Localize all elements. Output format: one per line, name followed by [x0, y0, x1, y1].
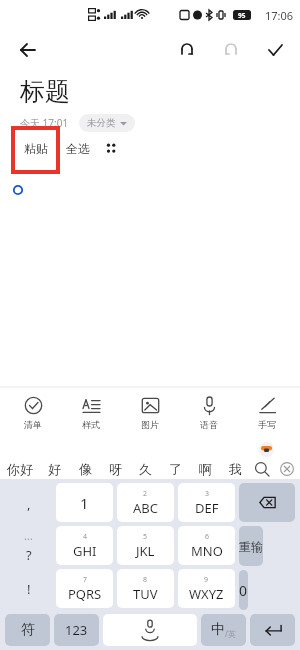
button[interactable]: 6: [178, 526, 235, 565]
button[interactable]: 9: [178, 569, 235, 608]
button[interactable]: 粘贴: [14, 132, 58, 164]
staticText: 啊: [199, 461, 212, 477]
button[interactable]: 样式: [65, 392, 117, 434]
staticText: TUV: [133, 585, 158, 603]
button[interactable]: Space: [103, 614, 197, 646]
button[interactable]: 好: [39, 461, 70, 477]
staticText: 3: [205, 489, 210, 499]
button[interactable]: More: [98, 132, 124, 164]
staticText: 久: [139, 461, 152, 477]
staticText: 好: [48, 461, 61, 477]
staticText: 图片: [141, 419, 159, 430]
staticText: PQRS: [68, 585, 102, 603]
button[interactable]: Backspace: [239, 483, 295, 522]
staticText: WXYZ: [189, 585, 224, 603]
button[interactable]: 你好: [0, 461, 39, 477]
staticText: 未分类: [87, 117, 116, 129]
button[interactable]: Done: [260, 35, 290, 65]
button[interactable]: Undo: [172, 35, 202, 65]
staticText: JKL: [136, 542, 155, 560]
staticText: 粘贴: [24, 141, 48, 156]
staticText: 像: [79, 461, 92, 477]
staticText: ...: [24, 528, 33, 543]
staticText: 全选: [66, 141, 90, 156]
button[interactable]: ...: [5, 524, 52, 568]
staticText: ?: [26, 546, 32, 564]
staticText: 4: [83, 532, 88, 542]
staticText: !: [27, 580, 31, 598]
button[interactable]: 4: [56, 526, 113, 565]
button[interactable]: Enter: [250, 614, 295, 646]
button[interactable]: 0: [239, 570, 248, 610]
button[interactable]: Redo: [216, 35, 246, 65]
staticText: 你好: [7, 461, 33, 477]
button[interactable]: Sticker: [259, 442, 274, 457]
staticText: MNO: [191, 542, 223, 560]
button[interactable]: ,: [5, 483, 52, 524]
staticText: 9: [204, 575, 209, 585]
staticText: 中: [211, 621, 225, 639]
staticText: 7: [83, 575, 88, 585]
staticText: ABC: [133, 499, 158, 517]
staticText: 8: [143, 575, 148, 585]
staticText: /英: [225, 628, 236, 639]
button[interactable]: 清单: [7, 392, 59, 434]
staticText: 5: [143, 532, 148, 542]
button[interactable]: 8: [117, 569, 174, 608]
button[interactable]: 全选: [58, 132, 98, 164]
staticText: 0: [239, 581, 248, 600]
button[interactable]: 3: [178, 483, 235, 522]
button[interactable]: 啊: [190, 461, 220, 477]
button[interactable]: 我: [220, 461, 250, 477]
staticText: 我: [229, 461, 242, 477]
button[interactable]: 7: [56, 569, 113, 608]
button[interactable]: 语音: [183, 392, 235, 434]
staticText: ,: [27, 495, 31, 513]
staticText: 清单: [24, 419, 42, 430]
button[interactable]: 2: [117, 483, 174, 522]
staticText: 2: [143, 489, 148, 499]
staticText: 手写: [258, 419, 276, 430]
staticText: 6: [205, 532, 210, 542]
button[interactable]: 呀: [100, 461, 130, 477]
button[interactable]: Close: [274, 462, 300, 476]
staticText: 标题: [20, 76, 70, 107]
staticText: 重输: [239, 539, 263, 554]
button[interactable]: !: [5, 568, 52, 610]
button[interactable]: 符: [5, 614, 50, 646]
staticText: GHI: [73, 542, 97, 560]
staticText: 语音: [200, 419, 218, 430]
button[interactable]: 手写: [241, 392, 293, 434]
button[interactable]: 中: [201, 614, 246, 646]
button[interactable]: 未分类: [79, 114, 135, 132]
staticText: 17:06: [265, 8, 294, 23]
staticText: 1: [80, 493, 89, 513]
button[interactable]: Search: [250, 462, 274, 476]
staticText: 95: [238, 11, 246, 20]
button[interactable]: 像: [70, 461, 100, 477]
button[interactable]: Back: [12, 34, 44, 66]
staticText: 今天 17:01: [20, 116, 69, 130]
staticText: 呀: [109, 461, 122, 477]
button[interactable]: 1: [56, 483, 113, 522]
button[interactable]: 重输: [239, 526, 263, 566]
button[interactable]: 图片: [124, 392, 176, 434]
staticText: DEF: [195, 499, 219, 517]
staticText: 了: [169, 461, 182, 477]
button[interactable]: 了: [160, 461, 190, 477]
button[interactable]: 5: [117, 526, 174, 565]
button[interactable]: 久: [130, 461, 160, 477]
staticText: 123: [65, 621, 88, 639]
staticText: 符: [21, 621, 35, 639]
button[interactable]: 123: [54, 614, 99, 646]
staticText: 样式: [82, 419, 100, 430]
